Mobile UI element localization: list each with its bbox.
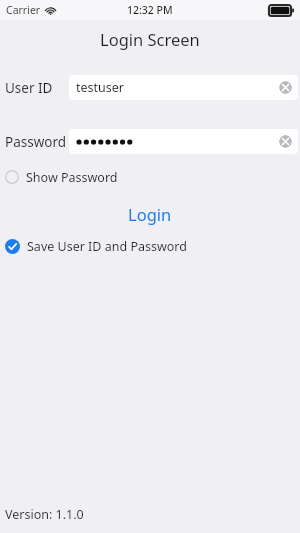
button[interactable]: Clear text (279, 81, 292, 94)
button[interactable]: Show Password (5, 166, 118, 188)
staticText: 12:32 PM (127, 3, 173, 17)
staticText: Version: 1.1.0 (5, 506, 84, 523)
button[interactable]: testuser (69, 75, 298, 100)
staticText: Show Password (26, 169, 118, 186)
button[interactable]: Login (0, 202, 300, 226)
button[interactable]: Save User ID and Password (5, 235, 187, 257)
button[interactable]: Clear text (279, 135, 292, 148)
staticText: User ID (5, 79, 53, 97)
staticText: Save User ID and Password (27, 238, 187, 255)
staticText: testuser (76, 79, 124, 96)
staticText: Login (128, 203, 172, 225)
staticText: Carrier (6, 3, 41, 17)
staticText: Login Screen (100, 28, 200, 50)
button[interactable]: Clear text (69, 129, 298, 154)
staticText: Password (5, 133, 67, 151)
